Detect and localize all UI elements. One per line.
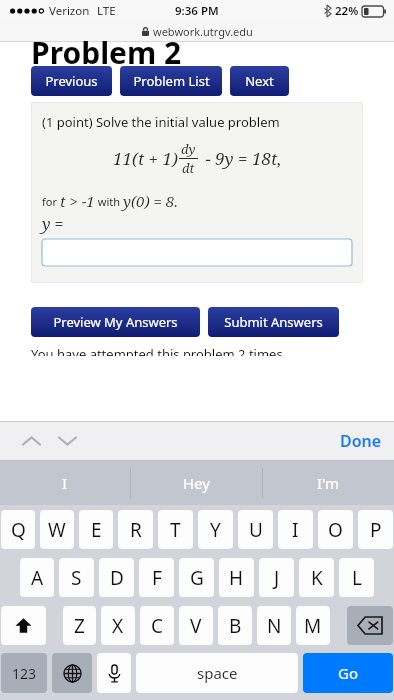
- button[interactable]: R: [118, 510, 153, 549]
- button[interactable]: W: [40, 510, 74, 549]
- button[interactable]: Answer input: [42, 239, 352, 266]
- staticText: Submit Answers: [224, 313, 323, 331]
- staticText: y(0) = 8.: [123, 191, 179, 211]
- staticText: − 9y = 18t,: [201, 147, 282, 170]
- staticText: Hey: [183, 473, 210, 493]
- staticText: Problem List: [133, 72, 210, 90]
- staticText: P: [370, 517, 382, 543]
- button[interactable]: Q: [1, 510, 35, 549]
- button[interactable]: U: [238, 510, 273, 549]
- staticText: 9:36 PM: [175, 3, 219, 19]
- staticText: y =: [42, 213, 64, 235]
- button[interactable]: C: [140, 606, 174, 645]
- staticText: O: [328, 517, 343, 543]
- staticText: with: [95, 194, 123, 209]
- button[interactable]: Go: [303, 653, 393, 693]
- staticText: K: [311, 565, 323, 591]
- staticText: Previous: [45, 72, 98, 90]
- button[interactable]: T: [158, 510, 193, 549]
- staticText: LTE: [97, 3, 116, 19]
- staticText: 123: [12, 664, 37, 683]
- button[interactable]: Address bar: [0, 22, 394, 41]
- button[interactable]: 123: [1, 653, 47, 693]
- button[interactable]: F: [139, 558, 174, 597]
- staticText: Q: [11, 517, 26, 543]
- staticText: A: [31, 565, 44, 591]
- button[interactable]: Previous field: [16, 426, 46, 456]
- button[interactable]: X: [101, 606, 135, 645]
- button[interactable]: Change keyboard: [52, 653, 92, 693]
- staticText: E: [91, 517, 102, 543]
- button[interactable]: N: [257, 606, 291, 645]
- button[interactable]: L: [339, 558, 374, 597]
- staticText: 22%: [335, 3, 359, 19]
- staticText: B: [229, 613, 242, 639]
- button[interactable]: I'm: [263, 461, 394, 505]
- button[interactable]: D: [99, 558, 134, 597]
- staticText: F: [152, 565, 162, 591]
- button[interactable]: Z: [63, 606, 96, 645]
- staticText: I: [292, 517, 299, 543]
- button[interactable]: M: [296, 606, 330, 645]
- staticText: V: [190, 613, 202, 639]
- staticText: Problem 2: [31, 32, 182, 73]
- staticText: (1 point) Solve the initial value proble…: [42, 113, 280, 131]
- button[interactable]: I: [278, 510, 313, 549]
- button[interactable]: Backspace: [347, 606, 393, 645]
- button[interactable]: V: [179, 606, 213, 645]
- button[interactable]: A: [20, 558, 54, 597]
- staticText: t > −1: [60, 191, 95, 211]
- staticText: space: [197, 663, 238, 683]
- button[interactable]: O: [318, 510, 353, 549]
- staticText: Z: [74, 613, 85, 639]
- button[interactable]: B: [218, 606, 252, 645]
- staticText: U: [249, 517, 263, 543]
- button[interactable]: I: [0, 461, 130, 505]
- button[interactable]: Dictation: [97, 653, 131, 693]
- staticText: Preview My Answers: [53, 313, 178, 331]
- staticText: dt: [182, 159, 195, 177]
- staticText: Done: [340, 430, 382, 452]
- staticText: webwork.utrgv.edu: [153, 24, 253, 39]
- staticText: Y: [210, 517, 221, 543]
- button[interactable]: H: [219, 558, 254, 597]
- staticText: 11(t + 1): [113, 147, 178, 170]
- button[interactable]: Next: [230, 66, 289, 96]
- button[interactable]: Previous: [31, 66, 112, 96]
- staticText: Next: [245, 72, 274, 90]
- staticText: Go: [338, 663, 358, 683]
- button[interactable]: Y: [198, 510, 233, 549]
- staticText: J: [274, 565, 280, 591]
- staticText: R: [130, 517, 142, 543]
- staticText: X: [112, 613, 124, 639]
- button[interactable]: K: [299, 558, 334, 597]
- staticText: You have attempted this problem 2 times.: [31, 345, 287, 356]
- button[interactable]: Problem List: [120, 66, 222, 96]
- staticText: dy: [181, 140, 196, 158]
- staticText: I'm: [317, 473, 340, 493]
- staticText: D: [110, 565, 124, 591]
- button[interactable]: Next field: [52, 426, 82, 456]
- staticText: W: [48, 517, 66, 543]
- staticText: I: [62, 473, 68, 493]
- button[interactable]: P: [358, 510, 393, 549]
- staticText: C: [151, 613, 164, 639]
- staticText: G: [190, 565, 204, 591]
- button[interactable]: G: [179, 558, 214, 597]
- staticText: Verizon: [49, 3, 90, 19]
- staticText: H: [229, 565, 244, 591]
- button[interactable]: E: [79, 510, 113, 549]
- staticText: M: [304, 613, 322, 639]
- button[interactable]: Shift: [1, 606, 46, 645]
- button[interactable]: Done: [340, 430, 382, 452]
- button[interactable]: Preview My Answers: [31, 307, 200, 337]
- button[interactable]: Submit Answers: [208, 307, 339, 337]
- staticText: for: [42, 194, 60, 209]
- button[interactable]: space: [136, 653, 298, 693]
- button[interactable]: S: [59, 558, 94, 597]
- staticText: L: [352, 565, 362, 591]
- staticText: T: [170, 517, 181, 543]
- staticText: S: [71, 565, 82, 591]
- button[interactable]: J: [259, 558, 294, 597]
- button[interactable]: Hey: [131, 461, 262, 505]
